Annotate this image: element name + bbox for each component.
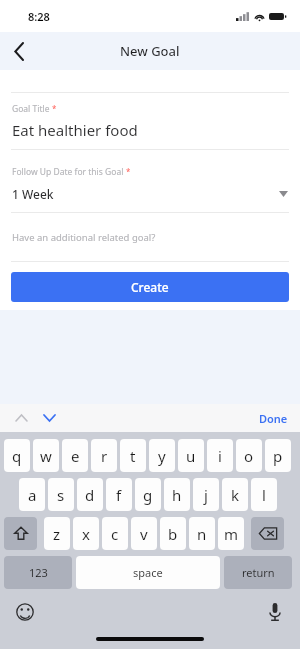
button[interactable]: Next field [38,407,60,429]
staticText: s [57,485,65,505]
staticText: 123 [29,565,48,580]
staticText: k [231,485,240,505]
staticText: b [168,524,178,544]
button[interactable]: h [164,478,190,511]
staticText: Follow Up Date for this Goal [12,166,124,178]
staticText: 8:28 [28,9,50,24]
button[interactable]: p [265,439,291,472]
button[interactable]: return [224,556,292,589]
staticText: l [262,485,266,505]
staticText: v [140,524,148,544]
staticText: p [273,446,283,466]
button[interactable]: a [19,478,45,511]
button[interactable]: k [222,478,248,511]
staticText: x [82,524,90,544]
button[interactable]: j [193,478,219,511]
button[interactable]: y [149,439,175,472]
staticText: e [71,446,80,466]
button[interactable]: 123 [4,556,72,589]
staticText: return [242,565,275,580]
button[interactable]: e [62,439,88,472]
button[interactable]: Dictation [262,599,288,625]
staticText: Create [131,279,169,295]
button[interactable]: c [102,517,128,550]
button[interactable]: Follow Up Date for this Goal [0,150,300,212]
button[interactable]: z [44,517,70,550]
button[interactable]: b [160,517,186,550]
staticText: Eat healthier food [12,120,138,140]
button[interactable]: w [33,439,59,472]
staticText: Have an additional related goal? [12,231,156,244]
staticText: y [158,446,166,466]
staticText: c [111,524,119,544]
staticText: a [28,485,37,505]
button[interactable]: f [106,478,132,511]
staticText: 1 Week [12,186,279,202]
button[interactable]: Previous field [10,407,32,429]
staticText: z [53,524,61,544]
staticText: g [143,485,153,505]
staticText: Done [259,411,288,426]
button[interactable]: m [218,517,244,550]
button[interactable]: Key [4,517,37,550]
staticText: Goal Title [12,103,50,115]
staticText: w [40,446,52,466]
button[interactable]: Key [251,517,284,550]
staticText: h [172,485,182,505]
button[interactable]: o [236,439,262,472]
staticText: n [197,524,207,544]
button[interactable]: Create [11,272,289,302]
staticText: space [133,565,163,580]
button[interactable]: Back [0,32,38,70]
staticText: d [85,485,95,505]
button[interactable]: i [207,439,233,472]
button[interactable]: Have an additional related goal? [0,213,300,261]
button[interactable]: Done [247,406,300,431]
button[interactable]: q [4,439,30,472]
staticText: i [218,446,222,466]
staticText: t [130,446,136,466]
staticText: q [12,446,22,466]
button[interactable]: t [120,439,146,472]
staticText: * [52,103,57,114]
button[interactable]: l [251,478,277,511]
staticText: o [244,446,254,466]
button[interactable]: x [73,517,99,550]
button[interactable]: space [76,556,220,589]
staticText: New Goal [120,42,180,60]
staticText: j [204,485,208,505]
button[interactable]: s [48,478,74,511]
button[interactable]: d [77,478,103,511]
button[interactable]: u [178,439,204,472]
staticText: * [126,166,131,177]
button[interactable]: n [189,517,215,550]
button[interactable]: g [135,478,161,511]
staticText: f [116,485,122,505]
button[interactable]: r [91,439,117,472]
staticText: r [101,446,108,466]
button[interactable]: Emoji [12,599,38,625]
button[interactable]: v [131,517,157,550]
staticText: m [224,524,239,544]
button[interactable]: Goal Title [0,93,300,149]
staticText: u [186,446,196,466]
